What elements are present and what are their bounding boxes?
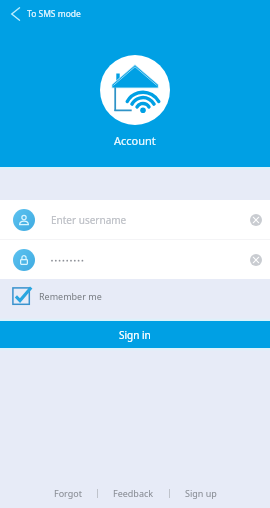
button[interactable]: Feedback xyxy=(111,482,156,504)
button[interactable]: Sign up xyxy=(183,482,219,504)
button[interactable]: Enter username xyxy=(0,200,270,239)
button[interactable]: Remember me xyxy=(12,285,102,306)
staticText: Forgot xyxy=(54,487,82,499)
staticText: Feedback xyxy=(113,487,154,499)
button[interactable]: To SMS mode xyxy=(6,3,87,25)
staticText: Remember me xyxy=(39,290,102,302)
button[interactable]: Clear xyxy=(243,207,269,233)
button[interactable]: Forgot xyxy=(52,482,84,504)
staticText: To SMS mode xyxy=(27,8,81,20)
staticText: Sign in xyxy=(119,328,151,342)
button[interactable]: Clear xyxy=(243,247,269,273)
button[interactable]: Sign in xyxy=(0,321,270,348)
staticText: Sign up xyxy=(185,487,217,499)
staticText: Account xyxy=(114,133,156,148)
staticText: Enter username xyxy=(51,213,127,227)
button[interactable]: Clear xyxy=(0,240,270,279)
